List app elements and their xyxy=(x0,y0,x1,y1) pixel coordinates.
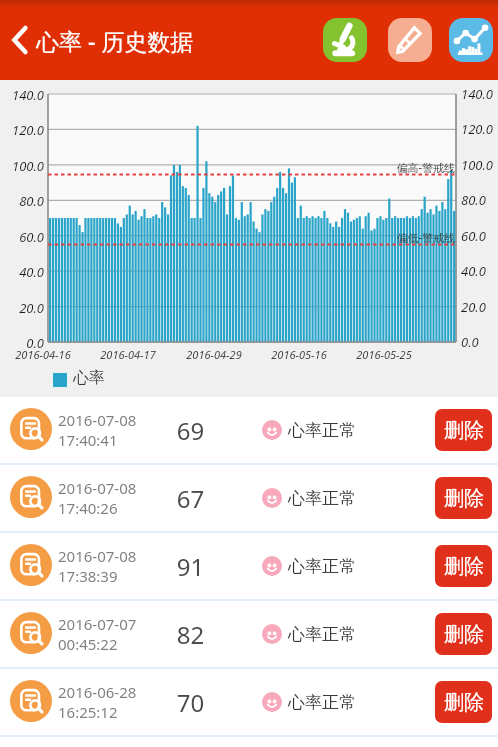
staticText: 17:38:39 xyxy=(58,566,118,586)
staticText: 120.0 xyxy=(461,120,493,138)
staticText: 2016-04-17 xyxy=(88,347,168,362)
staticText: 2016-05-25 xyxy=(344,347,424,362)
staticText: 2016-07-08 xyxy=(58,410,137,430)
button[interactable]: 2016-07-07 xyxy=(0,601,498,667)
button[interactable]: 删除 xyxy=(435,613,492,655)
staticText: 2016-05-16 xyxy=(259,347,339,362)
button[interactable]: 删除 xyxy=(435,545,492,587)
staticText: 00:45:22 xyxy=(58,634,118,654)
staticText: 140.0 xyxy=(0,86,44,104)
button[interactable]: 2016-07-08 xyxy=(0,533,498,599)
staticText: 心率正常 xyxy=(288,488,356,509)
staticText: 心率正常 xyxy=(288,692,356,713)
staticText: 91 xyxy=(163,550,218,583)
staticText: 60.0 xyxy=(0,228,44,246)
staticText: 删除 xyxy=(444,418,484,443)
staticText: 心率正常 xyxy=(288,420,356,441)
staticText: 100.0 xyxy=(0,157,44,175)
staticText: 2016-07-07 xyxy=(58,614,137,634)
staticText: 心率 - 历史数据 xyxy=(36,25,194,56)
staticText: 删除 xyxy=(444,486,484,511)
staticText: 心率 xyxy=(73,368,105,388)
button[interactable] xyxy=(323,18,367,62)
staticText: 2016-04-29 xyxy=(174,347,254,362)
staticText: 60.0 xyxy=(461,227,486,245)
button[interactable]: 删除 xyxy=(435,409,492,451)
staticText: 69 xyxy=(163,414,218,447)
staticText: 心率正常 xyxy=(288,624,356,645)
button[interactable]: 2016-07-08 xyxy=(0,465,498,531)
staticText: 100.0 xyxy=(461,156,493,174)
staticText: 2016-06-28 xyxy=(58,682,137,702)
staticText: 删除 xyxy=(444,690,484,715)
staticText: 140.0 xyxy=(461,85,493,103)
button[interactable] xyxy=(449,18,493,62)
staticText: 0.0 xyxy=(0,334,44,352)
staticText: 偏高-警戒线 xyxy=(0,160,455,175)
staticText: 80.0 xyxy=(461,191,486,209)
staticText: 心率正常 xyxy=(288,556,356,577)
button[interactable]: 删除 xyxy=(435,477,492,519)
button[interactable]: 2016-07-08 xyxy=(0,397,498,463)
staticText: 删除 xyxy=(444,554,484,579)
staticText: 16:25:12 xyxy=(58,702,118,722)
staticText: 20.0 xyxy=(0,299,44,317)
staticText: 82 xyxy=(163,618,218,651)
staticText: 20.0 xyxy=(461,298,486,316)
button[interactable]: 2016-06-28 xyxy=(0,669,498,735)
staticText: 17:40:41 xyxy=(58,430,118,450)
staticText: 删除 xyxy=(444,622,484,647)
staticText: 2016-04-16 xyxy=(3,347,83,362)
staticText: 67 xyxy=(163,482,218,515)
staticText: 17:40:26 xyxy=(58,498,118,518)
staticText: 120.0 xyxy=(0,121,44,139)
staticText: 70 xyxy=(163,686,218,719)
button[interactable] xyxy=(8,18,36,62)
staticText: 40.0 xyxy=(0,263,44,281)
staticText: 0.0 xyxy=(461,333,479,351)
staticText: 2016-07-08 xyxy=(58,478,137,498)
button[interactable] xyxy=(388,18,432,62)
staticText: 偏低-警戒线 xyxy=(0,230,455,245)
staticText: 2016-07-08 xyxy=(58,546,137,566)
staticText: 40.0 xyxy=(461,262,486,280)
button[interactable]: 删除 xyxy=(435,681,492,723)
staticText: 80.0 xyxy=(0,192,44,210)
